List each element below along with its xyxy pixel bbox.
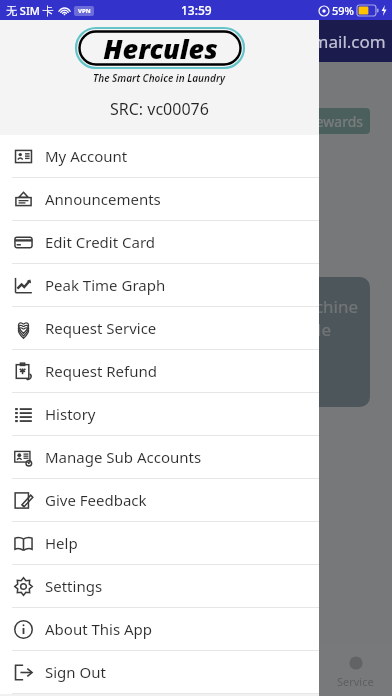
staticText: The Smart Choice in Laundry [93,71,226,85]
button[interactable]: Manage Sub Accounts [0,436,319,478]
staticText: SRC: vc00076 [110,98,209,120]
staticText: Settings [45,576,103,596]
staticText: VPN [78,7,91,15]
staticText: Service [337,674,374,689]
staticText: Give Feedback [45,490,147,510]
button[interactable]: Peak Time Graph [0,264,319,306]
staticText: Help [45,533,78,553]
staticText: My Account [45,146,128,166]
staticText: Announcements [45,189,161,209]
button[interactable]: Help [0,522,319,564]
button[interactable]: Rewards [300,108,370,134]
button[interactable]: Request Service [0,307,319,349]
button[interactable]: Request Refund [0,350,319,392]
button[interactable]: About This App [0,608,319,650]
button[interactable]: Give Feedback [0,479,319,521]
button[interactable]: Settings [0,565,319,607]
staticText: About This App [45,619,153,639]
staticText: Request Refund [45,361,157,381]
button[interactable]: Edit Credit Card [0,221,319,263]
staticText: myaccount@gmail.com [199,30,386,53]
button[interactable]: Sign Out [0,651,319,693]
staticText: 59% [332,3,354,18]
staticText: History [45,404,96,424]
staticText: Request Service [45,318,157,338]
staticText: 无 SIM 卡 [6,3,54,18]
staticText: 13:59 [181,2,212,18]
staticText: Peak Time Graph [45,275,166,295]
button[interactable]: Announcements [0,178,319,220]
staticText: Machine Code [290,295,370,341]
staticText: Hercules [103,30,218,67]
staticText: Rewards [307,112,363,131]
staticText: Sign Out [45,662,106,682]
button[interactable]: History [0,393,319,435]
button[interactable]: Machine Code [180,277,370,407]
button[interactable]: My Account [0,135,319,177]
staticText: Edit Credit Card [45,232,156,252]
staticText: Manage Sub Accounts [45,447,202,467]
